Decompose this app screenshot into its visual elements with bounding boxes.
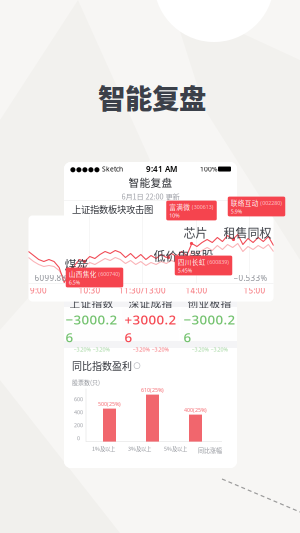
staticText: 股票数(只): [72, 378, 100, 387]
staticText: 5.9%: [231, 208, 242, 215]
staticText: 600: [74, 395, 83, 403]
staticText: 同比指数盈利: [72, 358, 132, 373]
staticText: −3.20% −3.20%: [132, 346, 168, 353]
staticText: (600839): [207, 258, 229, 265]
staticText: −3000.26: [65, 310, 117, 346]
staticText: 同比涨幅: [198, 446, 222, 454]
staticText: +3000.26: [124, 310, 176, 346]
staticText: 联络互动: [231, 198, 259, 208]
staticText: −3.20% −3.20%: [73, 346, 109, 353]
staticText: 深证成指: [128, 295, 172, 310]
staticText: 富满微: [169, 202, 190, 212]
staticText: 400(25%): [184, 406, 207, 414]
staticText: (002280): [260, 199, 282, 206]
staticText: 5%及以上: [164, 445, 187, 452]
staticText: 10:30: [78, 285, 100, 296]
staticText: 100%: [200, 165, 218, 173]
button[interactable]: 深证成指: [122, 307, 179, 341]
staticText: 200: [74, 421, 83, 429]
staticText: 10%: [169, 212, 179, 219]
staticText: 6099.88: [34, 273, 66, 283]
staticText: −0.533%: [233, 273, 267, 283]
staticText: 3%及以上: [128, 445, 151, 452]
staticText: 低价电器股: [153, 247, 213, 264]
button[interactable]: 创业板指: [181, 307, 238, 341]
staticText: 上证指数板块攻击图: [72, 202, 153, 216]
staticText: 6.5%: [69, 279, 80, 286]
staticText: 6月1日 22:00 更新: [121, 191, 179, 201]
staticText: 0: [77, 434, 80, 442]
staticText: 500(25%): [98, 400, 121, 408]
staticText: 9:00: [30, 285, 47, 296]
staticText: 11:30/13:00: [119, 285, 166, 296]
staticText: 上证指数: [69, 295, 113, 310]
staticText: 9:41 AM: [146, 164, 177, 174]
staticText: 四川长虹: [178, 257, 206, 267]
staticText: 智能复盘: [98, 77, 206, 117]
staticText: 租售同权: [223, 224, 271, 241]
staticText: 610(25%): [141, 386, 164, 394]
staticText: 5.45%: [178, 267, 192, 274]
staticText: ●●●●● Sketch: [70, 165, 123, 173]
staticText: (600740): [98, 270, 120, 277]
staticText: 山西焦化: [69, 269, 97, 279]
staticText: 芯片: [183, 224, 207, 241]
staticText: 400: [74, 408, 83, 416]
staticText: 煤炭: [64, 256, 88, 273]
staticText: −3000.26: [183, 310, 235, 346]
staticText: 1%及以上: [92, 445, 115, 452]
staticText: 创业板指: [187, 295, 231, 310]
staticText: (300613): [192, 203, 214, 210]
staticText: 智能复盘: [128, 174, 172, 190]
button[interactable]: 上证指数: [63, 307, 120, 341]
staticText: 15:00: [243, 285, 265, 296]
staticText: 14:00: [185, 285, 207, 296]
staticText: −3.20% −3.20%: [191, 346, 227, 353]
